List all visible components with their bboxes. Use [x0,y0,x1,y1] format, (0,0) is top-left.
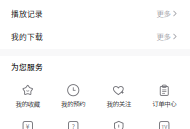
button[interactable]: 我的预约 [50,84,96,108]
button[interactable]: 我的权益 [96,120,141,129]
staticText: ? [72,122,75,129]
button[interactable]: ? [50,120,96,129]
staticText: 更多 [157,8,171,19]
staticText: 我的收藏 [16,99,40,108]
button[interactable]: 我的收藏 [5,84,50,108]
staticText: TV [161,123,167,129]
staticText: ¥ [26,122,30,129]
staticText: 订单中心 [152,99,176,108]
staticText: 我的预约 [61,99,85,108]
staticText: 为您服务 [11,61,43,72]
staticText: 我的关注 [107,99,131,108]
button[interactable]: 我的关注 [96,84,141,108]
button[interactable]: 播放记录 [0,2,190,25]
staticText: 更多 [157,31,171,42]
staticText: 播放记录 [11,8,43,19]
button[interactable]: 我的下载 [0,25,190,48]
staticText: 我的下载 [11,31,43,42]
button[interactable]: 订单中心 [141,84,187,108]
button[interactable]: TV [141,120,187,129]
button[interactable]: ¥ [5,120,50,129]
